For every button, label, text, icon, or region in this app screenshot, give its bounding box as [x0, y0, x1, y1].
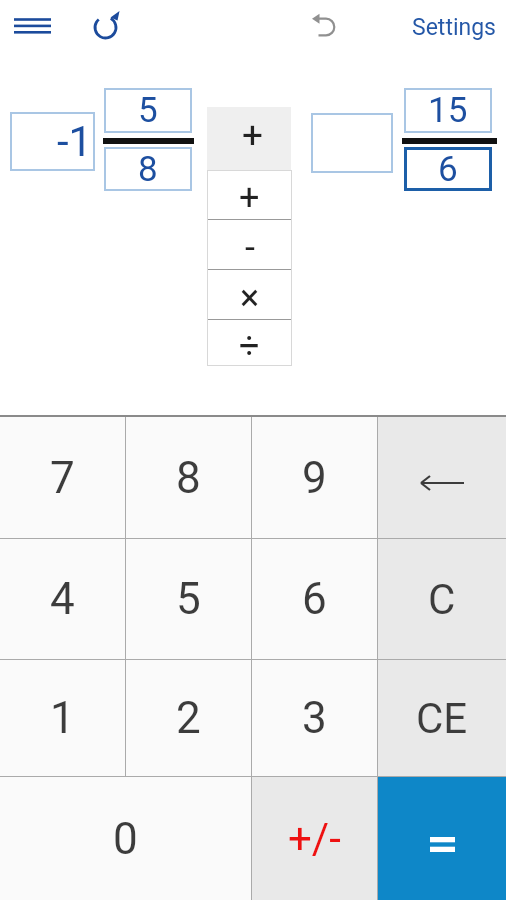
staticText: -1	[57, 117, 93, 166]
button[interactable]: 5	[104, 88, 192, 133]
staticText: -	[245, 227, 255, 269]
staticText: Settings	[412, 14, 496, 41]
staticText: 1	[50, 692, 75, 744]
staticText: 8	[138, 149, 158, 190]
button[interactable]: 8	[126, 417, 251, 538]
button[interactable]: +/-	[252, 777, 377, 900]
button[interactable]: +	[207, 107, 291, 170]
staticText: 0	[113, 813, 138, 865]
button[interactable]: 5	[126, 539, 251, 659]
button[interactable]: ÷	[207, 320, 292, 366]
button[interactable]	[378, 417, 506, 538]
button[interactable]: 2	[126, 660, 251, 776]
staticText: 9	[302, 452, 327, 504]
button[interactable]: -1	[10, 112, 95, 171]
staticText: 6	[438, 149, 458, 190]
button[interactable]: 3	[252, 660, 377, 776]
button[interactable]: 7	[0, 417, 125, 538]
button[interactable]: 0	[0, 777, 251, 900]
button[interactable]: 1	[0, 660, 125, 776]
staticText: ÷	[239, 325, 260, 367]
button[interactable]: 6	[404, 147, 492, 191]
staticText: 4	[50, 573, 75, 625]
button[interactable]: CE	[378, 660, 506, 776]
button[interactable]: C	[378, 539, 506, 659]
button[interactable]: 4	[0, 539, 125, 659]
button[interactable]: 15	[404, 88, 492, 133]
staticText: +	[242, 114, 263, 157]
staticText: 6	[302, 573, 327, 625]
button[interactable]	[88, 8, 124, 46]
staticText: +/-	[288, 814, 341, 863]
staticText: C	[428, 575, 456, 624]
staticText: 15	[428, 90, 468, 131]
button[interactable]: 6	[252, 539, 377, 659]
staticText: ×	[240, 277, 260, 319]
button[interactable]: ×	[207, 270, 292, 319]
button[interactable]: 9	[252, 417, 377, 538]
staticText: 2	[176, 692, 201, 744]
button[interactable]	[308, 8, 344, 46]
staticText: 5	[176, 573, 201, 625]
staticText: 5	[138, 90, 158, 131]
button[interactable]: Settings	[406, 8, 502, 47]
staticText: 8	[176, 452, 201, 504]
staticText: 7	[50, 452, 75, 504]
button[interactable]	[311, 113, 393, 173]
staticText: +	[239, 177, 260, 219]
button[interactable]	[378, 777, 506, 900]
button[interactable]: +	[207, 170, 292, 219]
staticText: CE	[416, 694, 468, 743]
button[interactable]: -	[207, 220, 292, 269]
button[interactable]	[8, 10, 58, 44]
button[interactable]: 8	[104, 147, 192, 191]
staticText: 3	[302, 692, 327, 744]
